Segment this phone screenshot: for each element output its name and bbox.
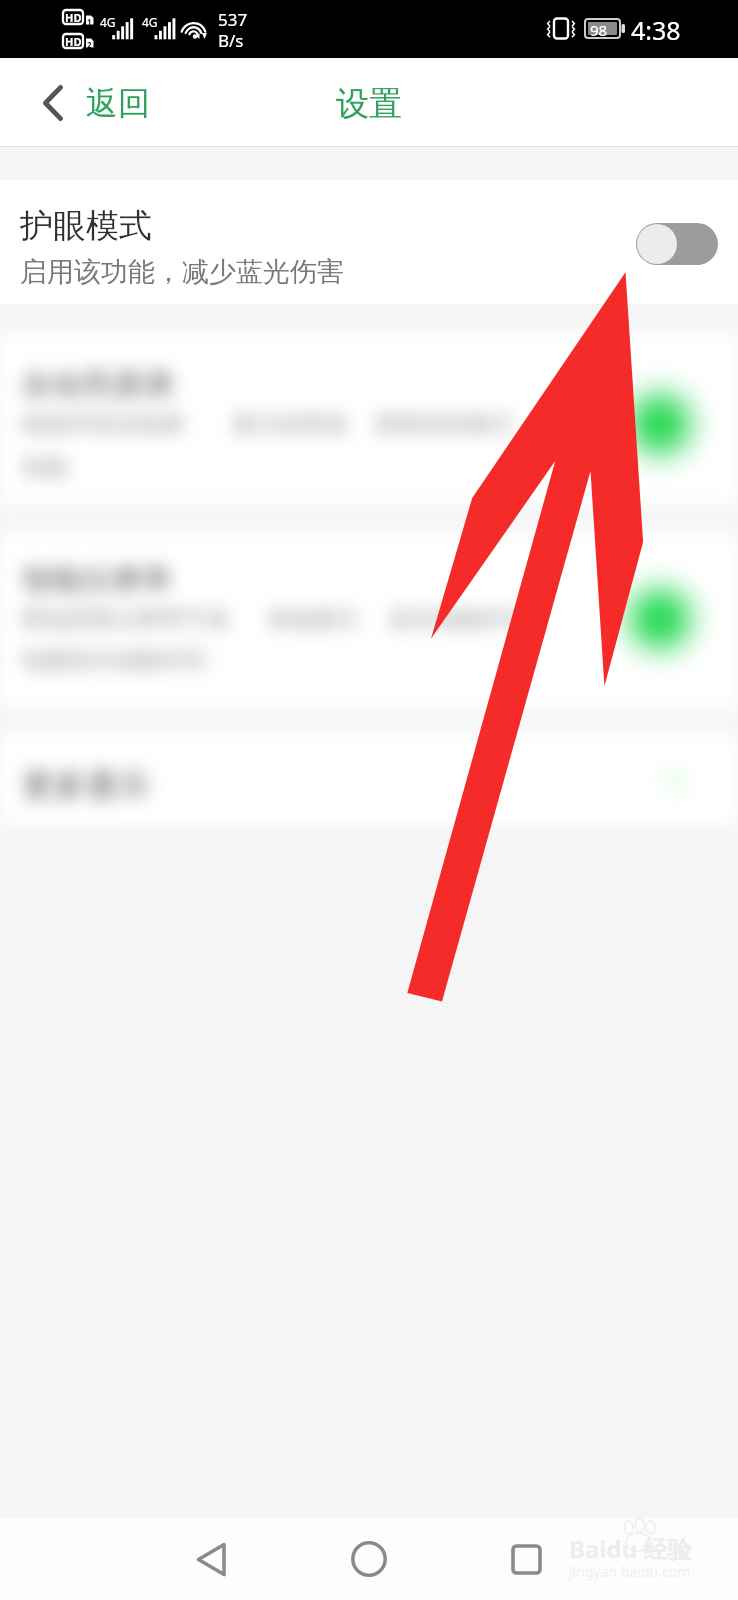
staticText: 98 — [590, 20, 608, 40]
staticText: 自动亮度调 — [22, 366, 172, 404]
button[interactable]: 返回 — [31, 75, 162, 131]
staticText: B/s — [218, 29, 244, 52]
staticText: 2 — [87, 39, 92, 50]
staticText: 电量延长续航时间 — [22, 646, 206, 675]
button[interactable]: Recent apps — [496, 1529, 556, 1589]
button[interactable]: 更多显示 — [0, 733, 738, 825]
staticText: 智能 — [22, 453, 68, 482]
staticText: 根据环境光线调 — [22, 410, 183, 439]
staticText: 537 — [218, 8, 248, 31]
staticText: 4G — [100, 14, 116, 30]
staticText: 4G — [142, 14, 158, 30]
staticText: 4:38 — [631, 13, 681, 47]
staticText: 降低屏幕分辨率节省 — [22, 605, 229, 634]
staticText: 显示设置项 — [232, 410, 347, 439]
button[interactable]: Toggle — [606, 565, 714, 673]
staticText: 省电模式 — [266, 605, 358, 634]
staticText: 设置 — [0, 83, 738, 125]
staticText: HD — [65, 34, 82, 49]
button[interactable]: 智能分辨率 — [0, 532, 738, 709]
button[interactable]: Home — [339, 1529, 399, 1589]
staticText: 智能分辨率 — [22, 561, 172, 599]
staticText: jingyan.baidu.com — [569, 1562, 691, 1581]
staticText: 启用该功能，减少蓝光伤害 — [20, 255, 344, 289]
staticText: 1 — [87, 16, 92, 27]
staticText: 屏幕色彩模式 — [374, 410, 512, 439]
staticText: 延长续航时长 — [390, 605, 528, 634]
button[interactable]: 护眼模式 — [0, 180, 738, 304]
staticText: HD — [65, 10, 82, 25]
staticText: 更多显示 — [22, 765, 150, 805]
button[interactable]: Back — [181, 1529, 241, 1589]
button[interactable]: Eye comfort mode toggle — [636, 223, 718, 265]
button[interactable]: Toggle — [606, 370, 714, 478]
staticText: 返回 — [86, 83, 150, 123]
staticText: Baidu 经验 — [569, 1532, 692, 1565]
button[interactable]: 自动亮度调 — [0, 332, 738, 504]
staticText: 护眼模式 — [20, 205, 152, 247]
